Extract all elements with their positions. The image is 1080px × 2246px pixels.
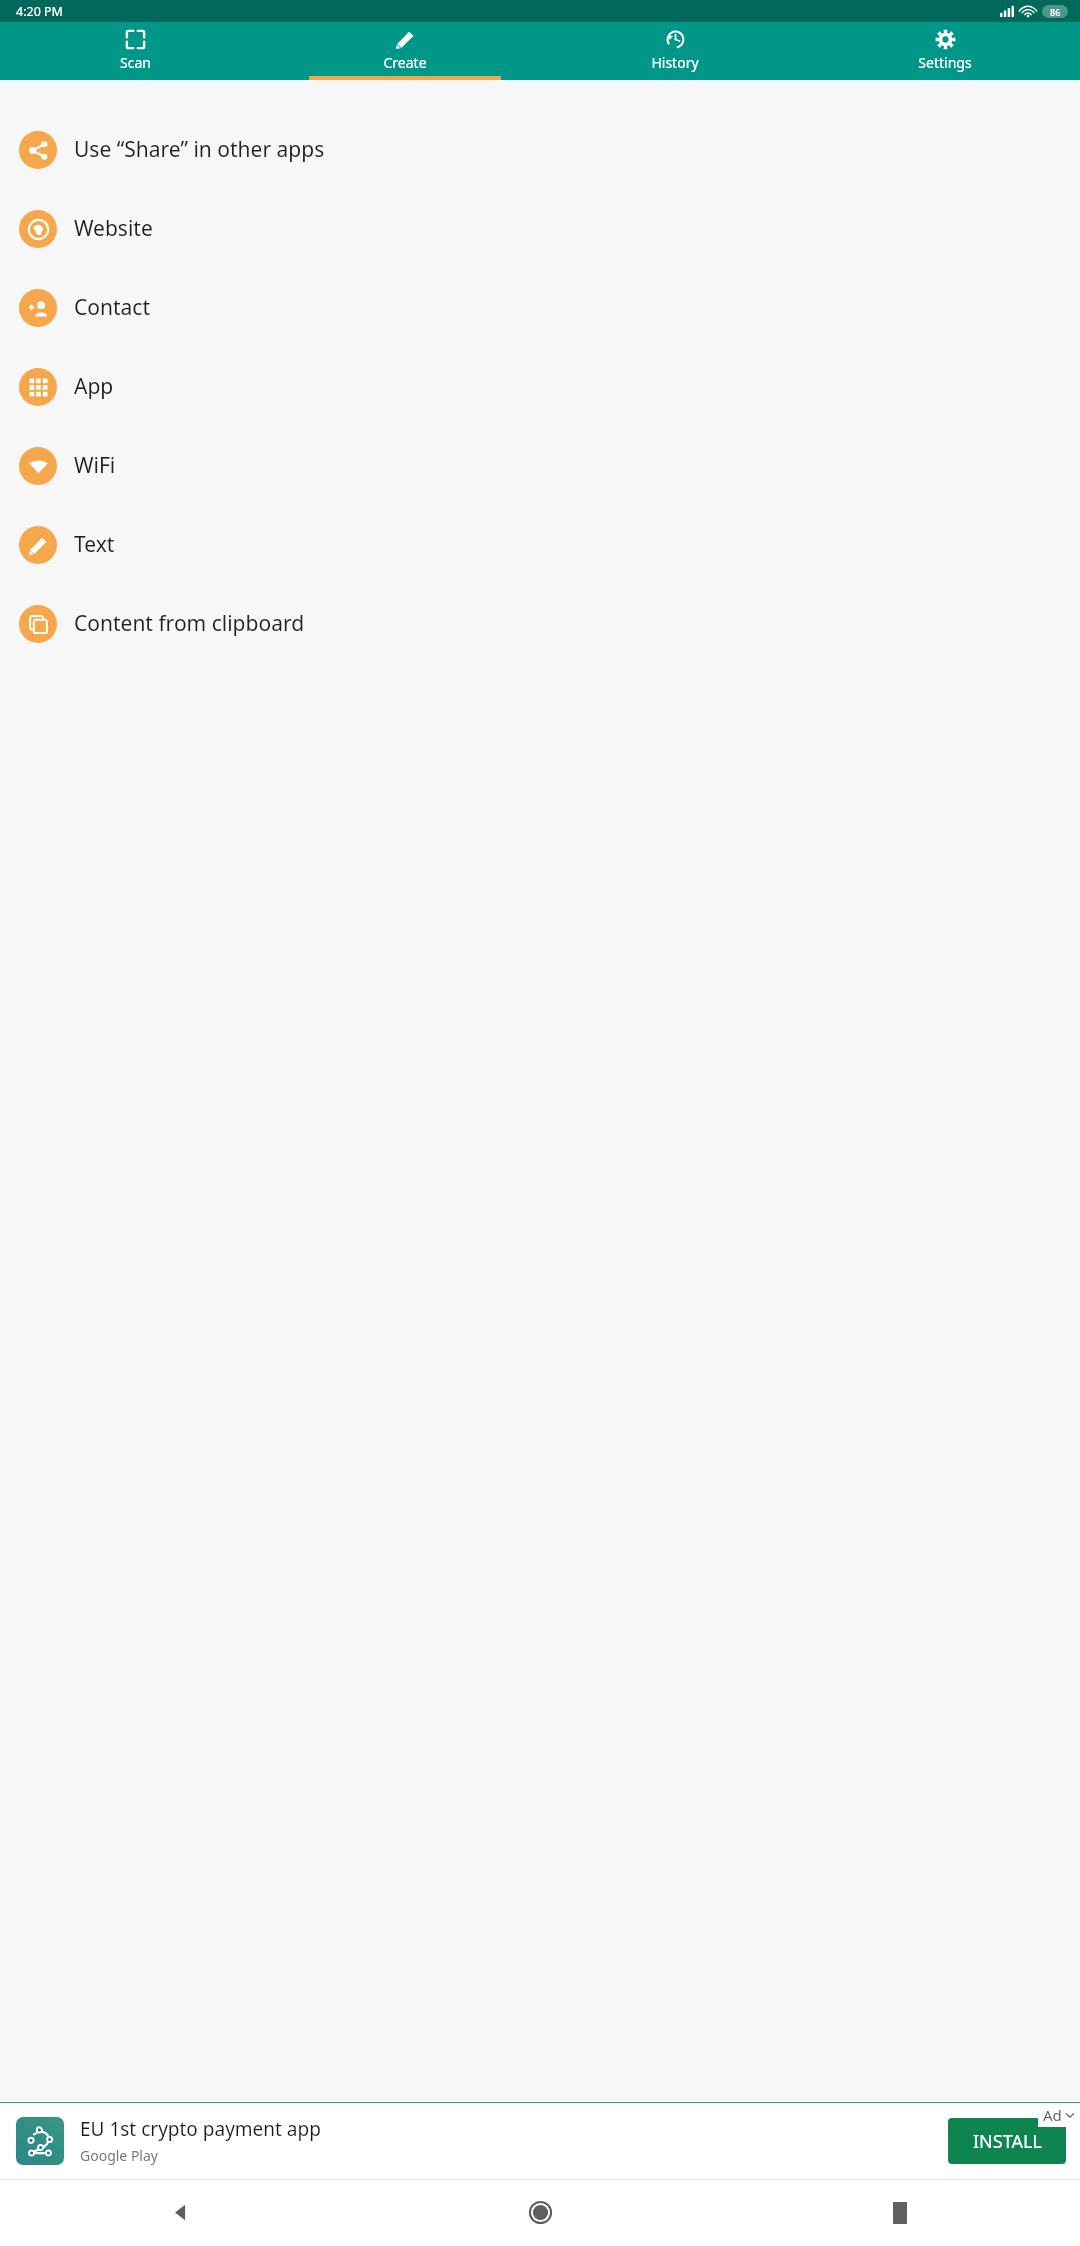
button[interactable]: Content from clipboard — [0, 584, 1080, 663]
staticText: Content from clipboard — [74, 609, 305, 638]
staticText: WiFi — [74, 451, 116, 480]
button[interactable]: WiFi — [0, 426, 1080, 505]
button[interactable]: Home — [360, 2179, 720, 2246]
staticText: Create — [383, 53, 427, 72]
staticText: Ad — [1043, 2105, 1062, 2125]
staticText: EU 1st crypto payment app — [80, 2116, 321, 2142]
button[interactable]: Settings — [810, 22, 1080, 80]
button[interactable]: Ad — [1038, 2103, 1080, 2127]
button[interactable]: Scan — [0, 22, 270, 80]
staticText: Text — [74, 530, 115, 559]
button[interactable]: App — [0, 347, 1080, 426]
staticText: Website — [74, 214, 153, 243]
staticText: 86 — [1050, 6, 1061, 18]
button[interactable]: Contact — [0, 268, 1080, 347]
staticText: Settings — [918, 53, 972, 72]
staticText: Use “Share” in other apps — [74, 135, 325, 164]
button[interactable]: Use “Share” in other apps — [0, 110, 1080, 189]
button[interactable]: Create — [270, 22, 540, 80]
staticText: App — [74, 372, 114, 401]
staticText: 4:20 PM — [16, 3, 63, 20]
button[interactable]: Website — [0, 189, 1080, 268]
button[interactable]: INSTALL — [948, 2118, 1066, 2164]
button[interactable]: History — [540, 22, 810, 80]
button[interactable]: Back — [0, 2179, 360, 2246]
staticText: Contact — [74, 293, 150, 322]
staticText: INSTALL — [973, 2129, 1042, 2154]
staticText: Scan — [120, 53, 151, 72]
button[interactable]: Recents — [720, 2179, 1080, 2246]
staticText: History — [651, 53, 699, 72]
staticText: Google Play — [80, 2146, 158, 2165]
button[interactable]: Text — [0, 505, 1080, 584]
